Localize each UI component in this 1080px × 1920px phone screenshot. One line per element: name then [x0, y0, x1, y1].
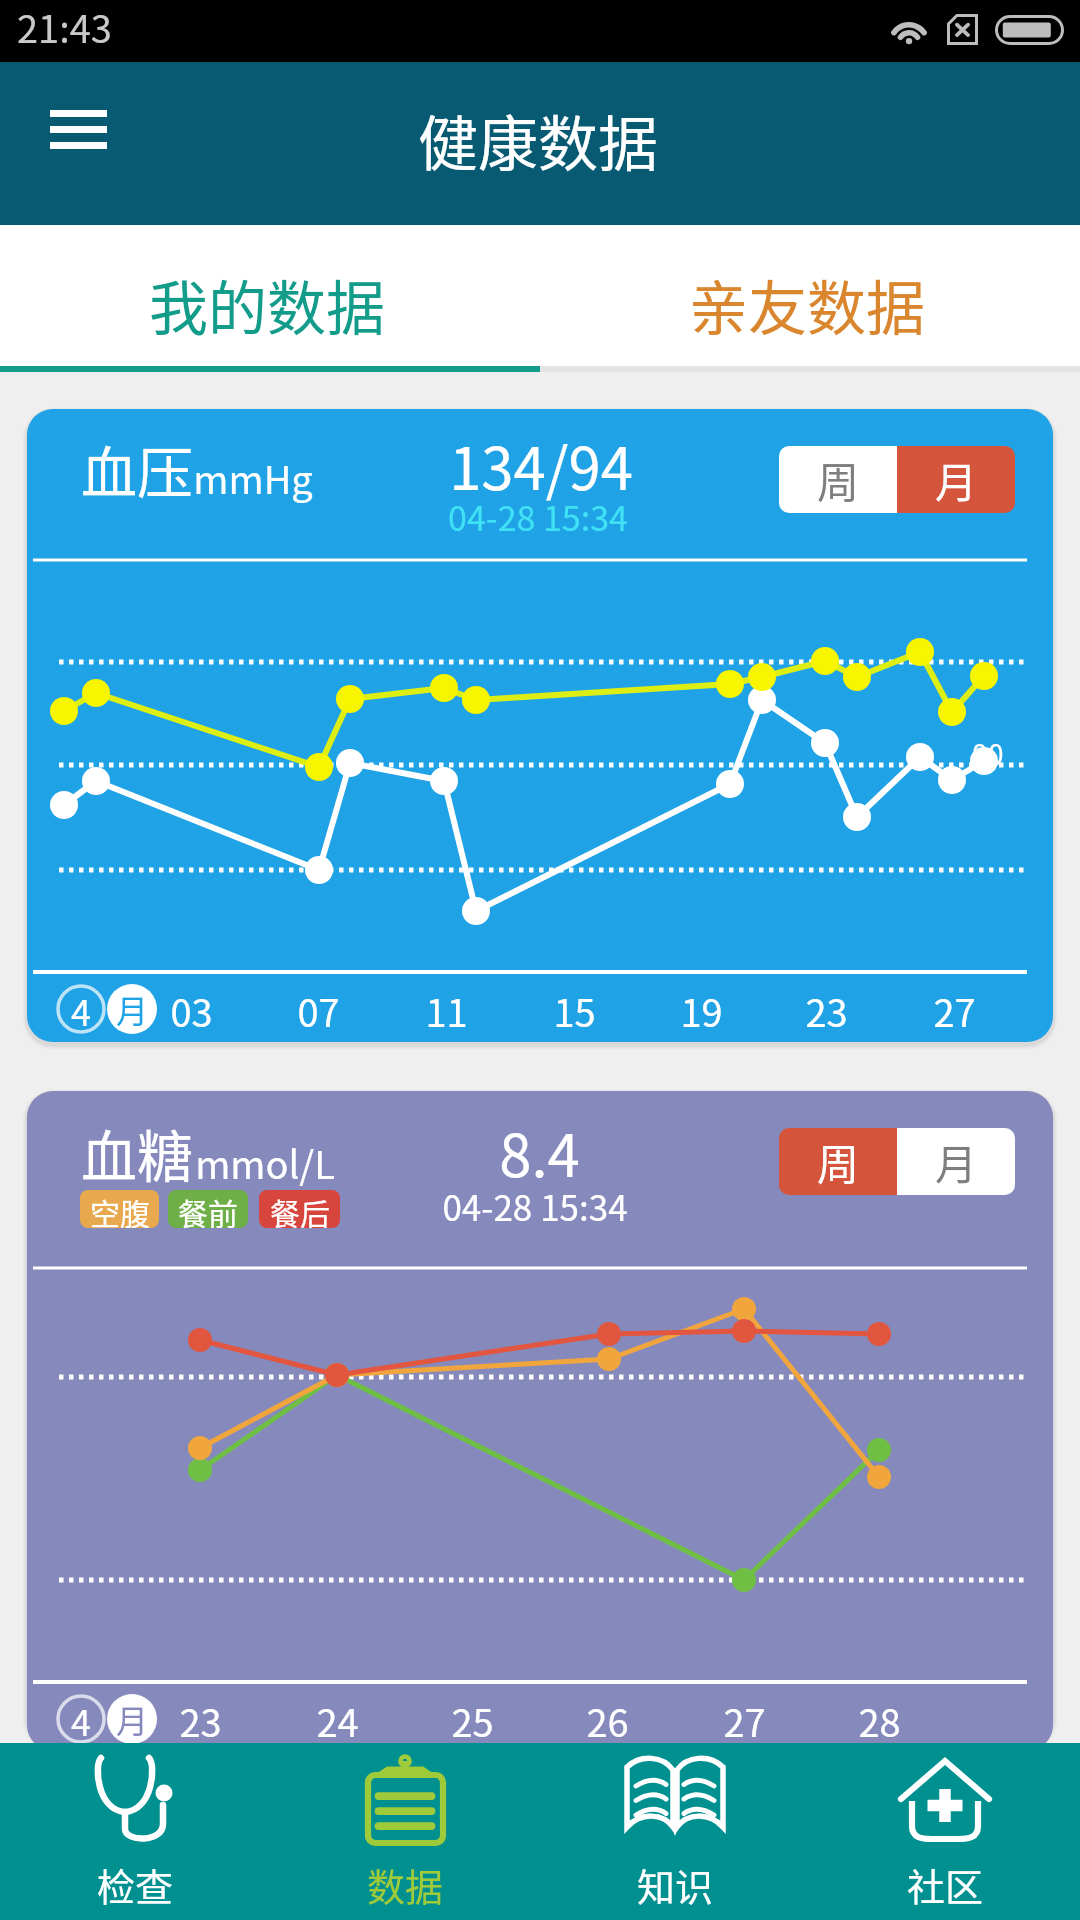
button[interactable]: 知识: [540, 1743, 810, 1920]
button[interactable]: 空腹: [80, 1190, 159, 1228]
staticText: 空腹: [90, 1190, 150, 1228]
staticText: 周: [817, 1131, 860, 1192]
button[interactable]: Select day: [56, 984, 106, 1034]
button[interactable]: 我的数据: [0, 225, 540, 366]
staticText: 4: [71, 1694, 91, 1744]
staticText: 04-28 15:34: [448, 492, 628, 541]
button[interactable]: 餐前: [168, 1190, 248, 1228]
button[interactable]: 餐后: [259, 1190, 340, 1228]
staticText: 25: [451, 1693, 494, 1748]
staticText: mmol/L: [195, 1135, 335, 1190]
staticText: 餐前: [178, 1190, 238, 1228]
staticText: 15: [553, 983, 596, 1038]
staticText: mmHg: [193, 450, 313, 505]
button[interactable]: 周: [779, 446, 897, 513]
staticText: 04-28 15:34: [442, 1180, 628, 1231]
staticText: 27: [723, 1693, 766, 1748]
staticText: 月: [935, 449, 978, 510]
button[interactable]: 血糖: [27, 1091, 1053, 1751]
button[interactable]: 社区: [810, 1743, 1080, 1920]
button[interactable]: 检查: [0, 1743, 270, 1920]
staticText: 19: [680, 983, 723, 1038]
staticText: 28: [858, 1693, 901, 1748]
staticText: 检查: [97, 1857, 174, 1912]
button[interactable]: 月: [897, 1128, 1015, 1195]
staticText: 周: [817, 449, 860, 510]
staticText: 月: [935, 1131, 978, 1192]
button[interactable]: 月: [897, 446, 1015, 513]
staticText: 21:43: [17, 0, 112, 54]
staticText: 知识: [637, 1857, 714, 1912]
staticText: 亲友数据: [689, 262, 926, 347]
button[interactable]: 周: [779, 1128, 897, 1195]
staticText: 月: [116, 986, 149, 1032]
staticText: 134/94: [449, 423, 633, 503]
staticText: 餐后: [270, 1190, 330, 1228]
staticText: 27: [933, 983, 976, 1038]
button[interactable]: Select day: [56, 1694, 106, 1744]
staticText: 24: [316, 1693, 359, 1748]
button[interactable]: 血压: [27, 409, 1053, 1042]
staticText: 23: [805, 983, 848, 1038]
button[interactable]: 亲友数据: [540, 225, 1080, 366]
button[interactable]: Select month: [107, 1694, 157, 1744]
button[interactable]: 数据: [270, 1743, 540, 1920]
staticText: 26: [586, 1693, 629, 1748]
staticText: 8.4: [499, 1110, 580, 1190]
staticText: 4: [71, 984, 91, 1034]
staticText: 血糖: [81, 1112, 193, 1192]
staticText: 健康数据: [418, 96, 658, 183]
staticText: 血压: [81, 428, 193, 508]
staticText: 03: [170, 983, 213, 1038]
staticText: 社区: [907, 1857, 984, 1912]
staticText: 11: [425, 983, 468, 1038]
button[interactable]: Select month: [107, 984, 157, 1034]
staticText: 07: [297, 983, 340, 1038]
staticText: 我的数据: [149, 262, 386, 347]
staticText: 90: [972, 733, 1004, 774]
staticText: 数据: [367, 1857, 444, 1912]
staticText: 月: [116, 1696, 149, 1742]
staticText: 23: [179, 1693, 222, 1748]
button[interactable]: Menu: [50, 110, 118, 162]
